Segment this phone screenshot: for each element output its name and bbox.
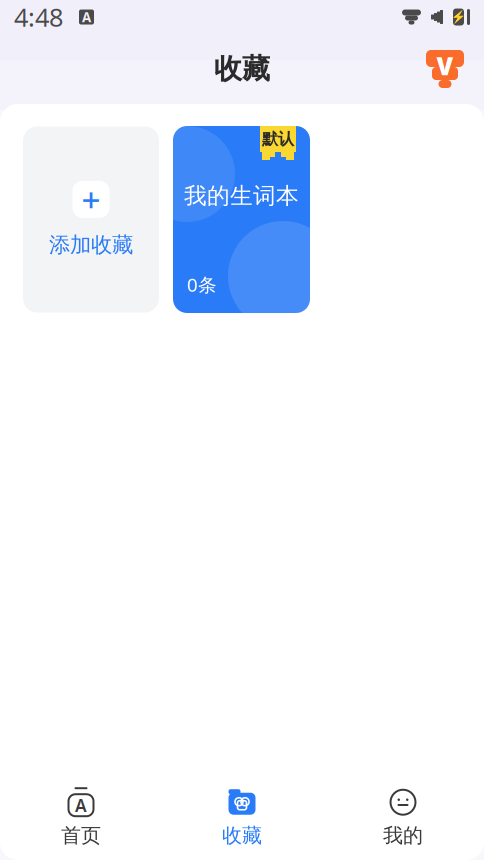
staticText: 我的生词本 [184,182,299,210]
button[interactable]: 收藏 [161,782,322,854]
button[interactable]: 我的 [322,782,483,854]
staticText: 0条 [187,272,217,297]
staticText: 首页 [61,823,101,848]
button[interactable]: 会员 [422,46,468,92]
staticText: + [81,177,100,222]
button[interactable]: 我的生词本 [173,126,310,313]
staticText: 默认 [262,129,294,149]
staticText: A [75,794,87,817]
staticText: 添加收藏 [49,232,133,258]
button[interactable]: A [0,782,161,854]
staticText: 收藏 [222,823,262,848]
staticText: ⚡ [451,10,466,24]
staticText: 收藏 [214,52,270,86]
staticText: A [82,8,91,26]
staticText: 4:48 [14,0,63,34]
button[interactable]: + [23,126,159,312]
staticText: 我的 [383,823,423,848]
staticText: V [436,50,453,82]
